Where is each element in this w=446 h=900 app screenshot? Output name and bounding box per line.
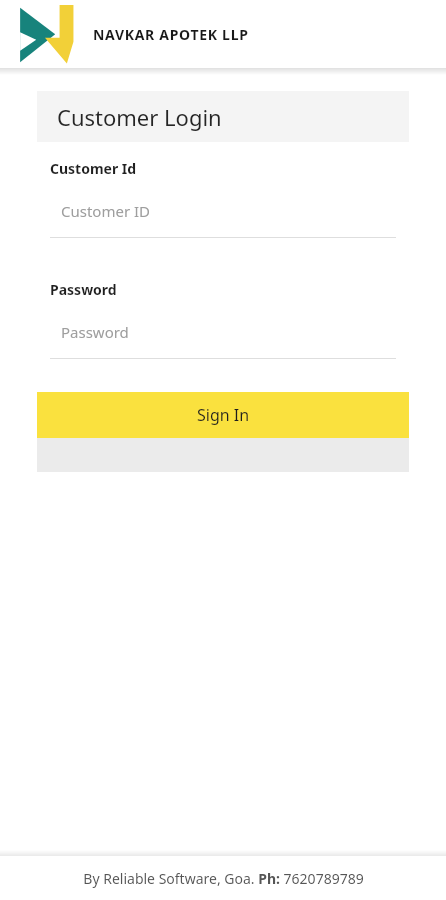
button[interactable]: Password bbox=[50, 322, 396, 359]
staticText: Customer Id bbox=[50, 159, 137, 178]
staticText: Password bbox=[50, 280, 117, 299]
staticText: NAVKAR APOTEK LLP bbox=[93, 25, 249, 44]
staticText: Customer Login bbox=[57, 102, 222, 132]
staticText: Sign In bbox=[197, 404, 250, 426]
staticText: Customer ID bbox=[61, 201, 151, 221]
staticText: Password bbox=[61, 322, 129, 342]
button[interactable]: Sign In bbox=[37, 392, 409, 438]
button[interactable]: Customer ID bbox=[50, 201, 396, 238]
staticText: By Reliable Software, Goa. Ph: 762078978… bbox=[83, 869, 364, 888]
other: Navkar Apotek logo bbox=[3, 0, 76, 68]
